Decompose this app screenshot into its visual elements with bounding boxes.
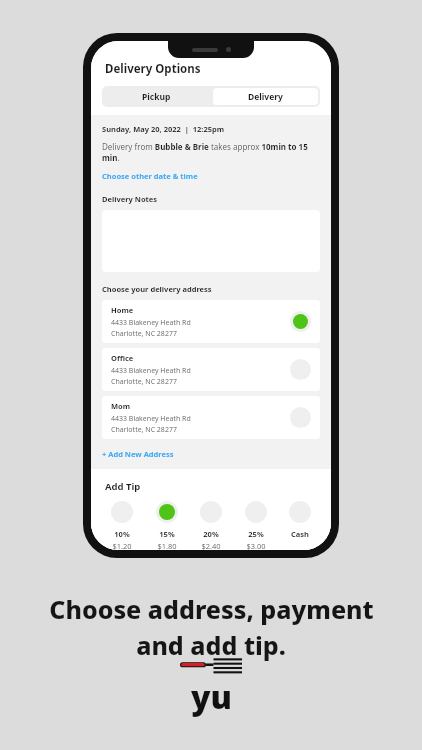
staticText: Choose other date & time (102, 171, 198, 181)
button[interactable]: Cash (279, 501, 321, 539)
staticText: Charlotte, NC 28277 (111, 425, 177, 435)
staticText: Delivery (248, 91, 283, 103)
staticText: $1.80 (157, 541, 177, 550)
button[interactable]: Home (102, 300, 320, 343)
staticText: 4433 Blakeney Heath Rd (111, 366, 191, 376)
button[interactable]: 15% (146, 501, 188, 550)
staticText: 4433 Blakeney Heath Rd (111, 414, 191, 424)
staticText: 20% (203, 529, 219, 539)
staticText: and add tip. (136, 628, 286, 662)
staticText: Sunday, May 20, 2022 | 12:25pm (102, 124, 225, 134)
staticText: Add Tip (105, 480, 141, 493)
staticText: 25% (248, 529, 264, 539)
staticText: yu (191, 675, 232, 719)
button[interactable]: 25% (235, 501, 277, 550)
button[interactable]: Mom (102, 396, 320, 439)
button[interactable]: + Add New Address (102, 449, 174, 459)
staticText: 4433 Blakeney Heath Rd (111, 318, 191, 328)
button[interactable]: Pickup (102, 86, 211, 107)
staticText: 10% (114, 529, 130, 539)
staticText: Delivery Notes (102, 194, 158, 204)
staticText: Office (111, 353, 134, 363)
staticText: Delivery from Bubble & Brie takes approx… (102, 141, 320, 163)
staticText: $1.20 (112, 541, 132, 550)
button[interactable]: Office (102, 348, 320, 391)
staticText: 15% (159, 529, 175, 539)
staticText: $2.40 (201, 541, 221, 550)
staticText: Charlotte, NC 28277 (111, 377, 177, 387)
button[interactable]: Delivery (213, 88, 318, 105)
staticText: Cash (291, 529, 309, 539)
staticText: Charlotte, NC 28277 (111, 329, 177, 339)
button[interactable]: Choose other date & time (102, 171, 198, 181)
staticText: Home (111, 305, 134, 315)
staticText: Delivery Options (105, 61, 201, 77)
staticText: Pickup (142, 91, 171, 103)
staticText: Choose address, payment (49, 592, 374, 626)
staticText: Mom (111, 401, 131, 411)
button[interactable]: 20% (190, 501, 232, 550)
staticText: $3.00 (246, 541, 266, 550)
button[interactable]: 10% (101, 501, 143, 550)
staticText: Choose your delivery address (102, 284, 212, 294)
staticText: + Add New Address (102, 449, 174, 459)
